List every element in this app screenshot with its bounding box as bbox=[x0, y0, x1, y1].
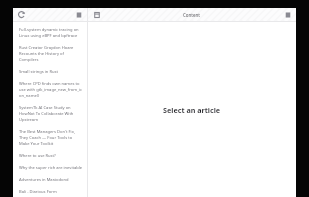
staticText: Where to use Rust? bbox=[19, 153, 56, 159]
staticText: Small strings in Rust bbox=[19, 69, 58, 75]
staticText: SystemTk AI Case Study on HowNot To Coll… bbox=[19, 105, 83, 123]
staticText: Rust Creator Graydon Hoare Recounts the … bbox=[19, 45, 83, 63]
staticText: Select an article bbox=[163, 105, 221, 115]
button[interactable]: Where CPD finds own names to use with gt… bbox=[13, 78, 87, 102]
button[interactable]: Where to use Rust? bbox=[13, 150, 87, 162]
button[interactable]: Full-system dynamic tracing on Linux usi… bbox=[13, 24, 87, 42]
button[interactable]: More options bbox=[282, 9, 293, 20]
button[interactable]: SystemTk AI Case Study on HowNot To Coll… bbox=[13, 102, 87, 126]
staticText: Content bbox=[183, 12, 200, 18]
button[interactable]: Small strings in Rust bbox=[13, 66, 87, 78]
staticText: Full-system dynamic tracing on Linux usi… bbox=[19, 27, 83, 39]
button[interactable]: The Best Managers Don't Fix, They Coach … bbox=[13, 126, 87, 150]
button[interactable]: Article view bbox=[91, 9, 102, 20]
staticText: Where CPD finds own names to use with gt… bbox=[19, 81, 83, 99]
button[interactable]: Adventures in Mastodond bbox=[13, 174, 87, 186]
staticText: Why the super rich are inevitable bbox=[19, 165, 83, 171]
button[interactable]: Refresh bbox=[16, 9, 27, 20]
staticText: Bali - Diarious Form bbox=[19, 189, 57, 195]
button[interactable]: Bali - Diarious Form bbox=[13, 186, 87, 197]
button[interactable]: Why the super rich are inevitable bbox=[13, 162, 87, 174]
staticText: Adventures in Mastodond bbox=[19, 177, 69, 183]
staticText: The Best Managers Don't Fix, They Coach … bbox=[19, 129, 83, 147]
button[interactable]: Rust Creator Graydon Hoare Recounts the … bbox=[13, 42, 87, 66]
button[interactable]: Filter list bbox=[73, 9, 84, 20]
